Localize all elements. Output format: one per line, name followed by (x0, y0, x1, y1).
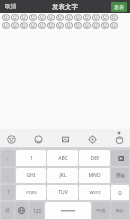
button[interactable]: 1 (16, 150, 46, 166)
staticText: TUV (58, 189, 68, 196)
staticText: DEF (90, 155, 100, 162)
staticText: 发表文字 (52, 3, 78, 11)
staticText: 重输 (116, 173, 125, 179)
button[interactable]: 中/英 (92, 202, 110, 219)
staticText: 中/英 (96, 208, 106, 213)
staticText: 1 (30, 155, 33, 162)
staticText: ? (7, 189, 10, 196)
button[interactable]: Space (45, 202, 91, 219)
staticText: PQRS (26, 190, 37, 196)
staticText: WXYZ (89, 190, 101, 196)
staticText: , (7, 155, 9, 162)
button[interactable]: DEF (79, 150, 110, 166)
button[interactable]: Backspace (111, 150, 129, 166)
button[interactable]: JKL (47, 168, 78, 183)
button[interactable]: 取消 (3, 2, 18, 11)
button[interactable]: Add (112, 132, 126, 146)
button[interactable]: 123 (29, 202, 44, 219)
button[interactable]: Mood (31, 132, 45, 146)
staticText: 换行 (116, 208, 124, 213)
button[interactable]: Photo (58, 132, 72, 146)
staticText: 123 (33, 208, 41, 214)
button[interactable]: PQRS (16, 185, 46, 200)
button[interactable]: 符 (1, 202, 14, 219)
button[interactable]: Language (15, 202, 28, 219)
staticText: 符 (5, 208, 10, 214)
staticText: GHI (26, 172, 36, 179)
staticText: . (7, 172, 9, 179)
button[interactable]: GHI (16, 168, 46, 183)
button[interactable]: Location (85, 132, 99, 146)
button[interactable]: WXYZ (79, 185, 110, 200)
button[interactable]: Emoji (4, 132, 18, 146)
button[interactable]: ? (1, 185, 15, 200)
button[interactable]: 重输 (111, 168, 129, 183)
button[interactable]: 0 (111, 185, 129, 200)
staticText: 发表 (114, 4, 124, 10)
button[interactable]: TUV (47, 185, 78, 200)
staticText: 0 (118, 189, 122, 197)
staticText: MNO (88, 172, 101, 179)
staticText: 取消 (5, 3, 16, 10)
button[interactable]: 发表 (111, 2, 127, 12)
button[interactable]: ABC (47, 150, 78, 166)
staticText: JKL (59, 172, 67, 179)
staticText: ABC (58, 155, 68, 162)
button[interactable]: 换行 (111, 202, 129, 219)
button[interactable]: MNO (79, 168, 110, 183)
